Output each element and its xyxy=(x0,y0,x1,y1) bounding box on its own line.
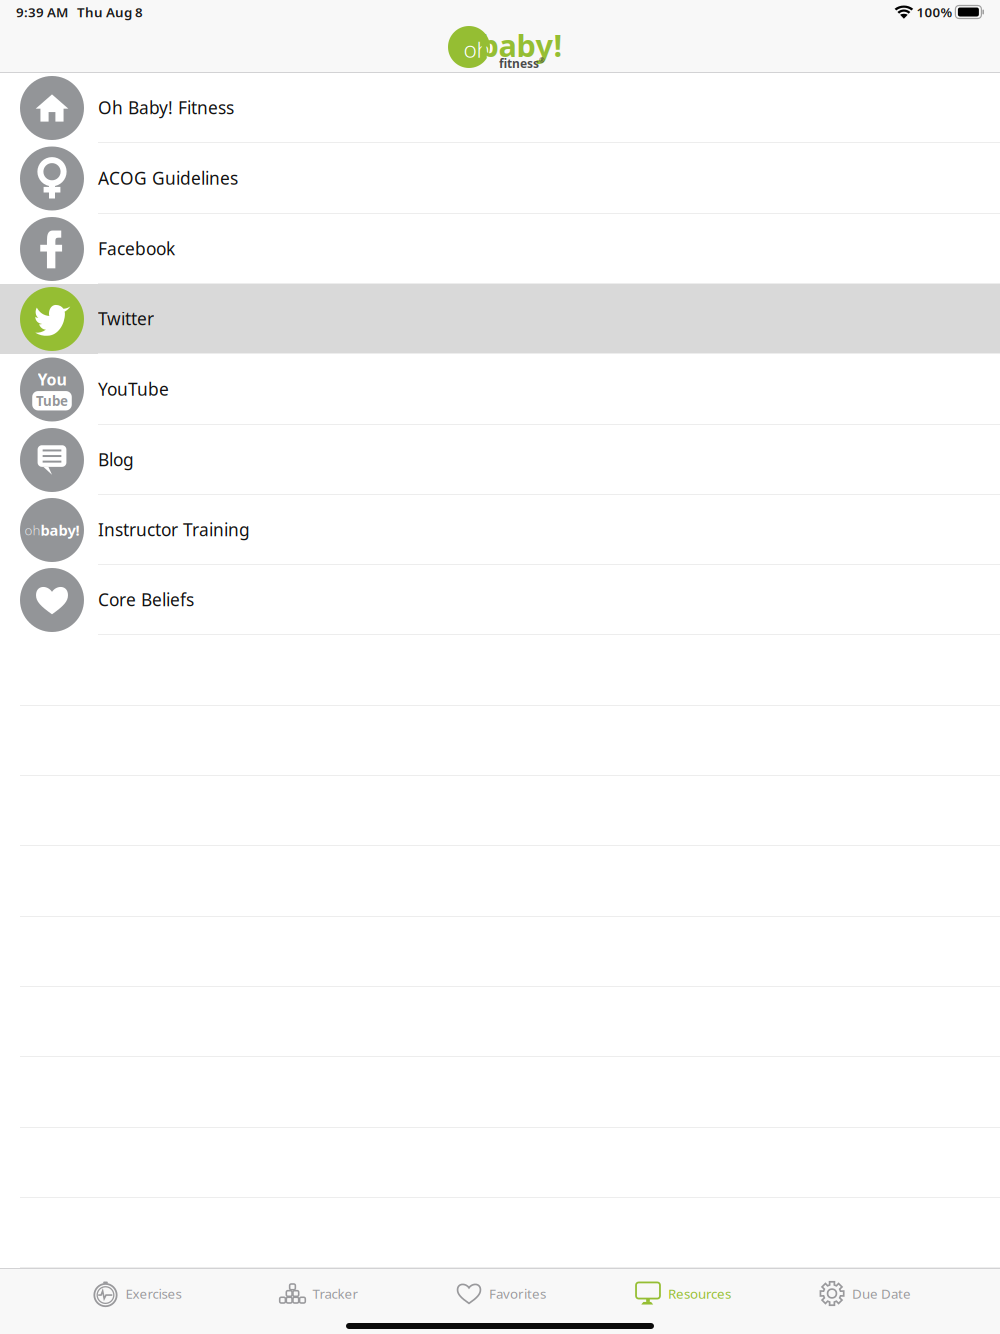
staticText: Blog xyxy=(98,448,134,471)
button[interactable]: Tracker xyxy=(279,1270,358,1316)
staticText: Facebook xyxy=(98,237,175,260)
staticText: baby! xyxy=(479,25,562,65)
staticText: oh xyxy=(24,521,40,539)
staticText: Tube xyxy=(36,392,68,410)
staticText: ACOG Guidelines xyxy=(98,166,238,189)
staticText: Favorites xyxy=(489,1285,546,1302)
staticText: Due Date xyxy=(852,1285,911,1302)
staticText: Thu Aug 8 xyxy=(77,3,143,21)
staticText: You xyxy=(37,369,66,390)
staticText: Instructor Training xyxy=(98,518,250,541)
button[interactable]: Blog xyxy=(0,425,1000,495)
staticText: fitness xyxy=(499,55,539,71)
staticText: Twitter xyxy=(98,307,154,330)
button[interactable]: ACOG Guidelines xyxy=(0,143,1000,214)
button[interactable]: Facebook xyxy=(0,214,1000,284)
staticText: Oh Baby! Fitness xyxy=(98,96,234,119)
staticText: 9:39 AM xyxy=(16,3,68,21)
button[interactable]: Due Date xyxy=(819,1270,911,1316)
button[interactable]: Exercises xyxy=(92,1270,181,1316)
staticText: Resources xyxy=(668,1285,731,1302)
staticText: oh xyxy=(463,34,490,64)
staticText: Core Beliefs xyxy=(98,588,194,611)
button[interactable]: Favorites xyxy=(456,1270,546,1316)
button[interactable]: Oh Baby! Fitness xyxy=(0,73,1000,143)
staticText: Exercises xyxy=(125,1285,181,1302)
staticText: ® xyxy=(539,56,545,65)
button[interactable]: Core Beliefs xyxy=(0,565,1000,635)
staticText: YouTube xyxy=(98,377,169,400)
button[interactable]: oh xyxy=(0,495,1000,565)
button[interactable]: Resources xyxy=(635,1270,731,1316)
button[interactable]: Twitter xyxy=(0,284,1000,354)
staticText: 100% xyxy=(913,3,955,21)
button[interactable]: You xyxy=(0,354,1000,425)
staticText: Tracker xyxy=(312,1285,358,1302)
staticText: baby! xyxy=(40,520,79,540)
